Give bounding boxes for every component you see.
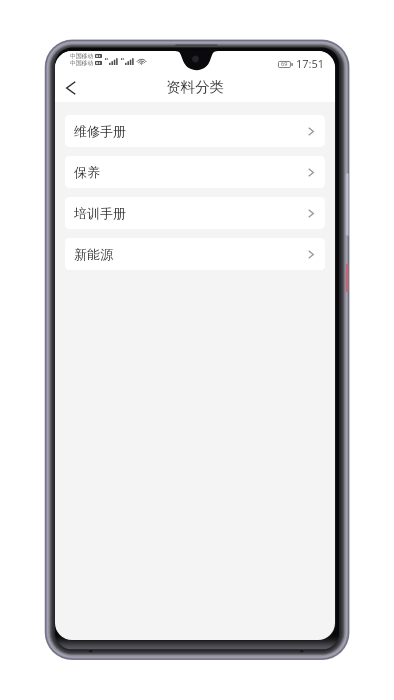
staticText: 中国移动 bbox=[70, 59, 94, 66]
staticText: 保养 bbox=[74, 164, 100, 180]
button[interactable]: 维修手册 bbox=[65, 115, 325, 147]
button[interactable]: 培训手册 bbox=[65, 197, 325, 229]
button[interactable]: 保养 bbox=[65, 156, 325, 188]
staticText: 中国移动 bbox=[70, 52, 94, 59]
staticText: 17:51 bbox=[296, 56, 325, 71]
staticText: 69 bbox=[281, 60, 288, 68]
staticText: 新能源 bbox=[74, 246, 113, 262]
button[interactable]: Back bbox=[56, 74, 85, 101]
button[interactable]: 新能源 bbox=[65, 238, 325, 270]
staticText: 资料分类 bbox=[166, 78, 224, 96]
staticText: 培训手册 bbox=[74, 205, 126, 221]
staticText: 维修手册 bbox=[74, 123, 126, 139]
